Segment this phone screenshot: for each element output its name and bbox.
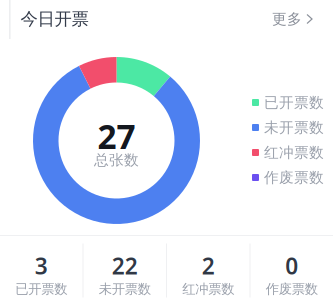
button[interactable]: 2 [167, 234, 249, 305]
staticText: 作废票数 [264, 168, 324, 186]
staticText: 3 [35, 251, 48, 281]
staticText: 27 [97, 114, 135, 158]
staticText: 已开票数 [264, 93, 324, 111]
staticText: 更多 [272, 10, 302, 28]
staticText: 2 [202, 251, 215, 281]
button[interactable]: 3 [0, 234, 82, 305]
staticText: 今日开票 [21, 8, 89, 30]
staticText: 红冲票数 [264, 143, 324, 161]
staticText: 作废票数 [266, 281, 318, 297]
staticText: 已开票数 [15, 281, 67, 297]
staticText: 0 [285, 251, 298, 281]
button[interactable]: 更多 [260, 0, 312, 38]
button[interactable]: 22 [83, 234, 166, 305]
staticText: 22 [112, 251, 138, 281]
staticText: 未开票数 [99, 281, 151, 297]
staticText: 总张数 [94, 151, 139, 169]
staticText: 未开票数 [264, 118, 324, 136]
staticText: 红冲票数 [182, 281, 234, 297]
button[interactable]: 0 [250, 234, 333, 305]
